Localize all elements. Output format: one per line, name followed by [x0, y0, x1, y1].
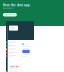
staticText: to the whole team	[3, 7, 13, 9]
staticText: From the chat app	[3, 3, 30, 7]
button[interactable]: Get started	[3, 13, 17, 16]
staticText: Get started	[5, 14, 15, 16]
